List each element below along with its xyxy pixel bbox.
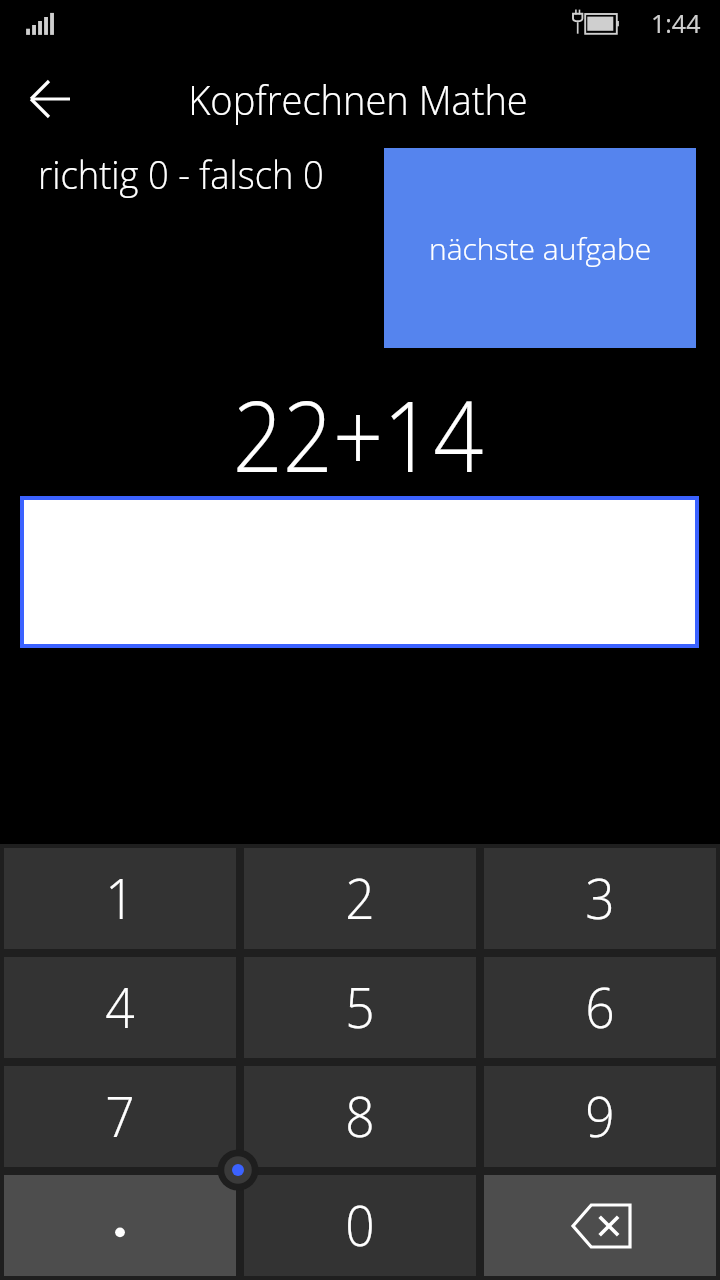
staticText: 0	[345, 1186, 375, 1262]
staticText: 1:44	[651, 6, 701, 40]
button[interactable]: nächste aufgabe	[384, 148, 696, 348]
button[interactable]: Decimal point	[4, 1175, 236, 1276]
button[interactable]: 4	[4, 957, 236, 1058]
staticText: richtig 0 - falsch 0	[38, 148, 324, 200]
staticText: 9	[585, 1077, 615, 1153]
button[interactable]: 5	[244, 957, 476, 1058]
staticText: 22+14	[32, 368, 684, 500]
other: Backspace	[484, 1175, 716, 1276]
staticText: 8	[345, 1077, 375, 1153]
button[interactable]: 9	[484, 1066, 716, 1167]
staticText: nächste aufgabe	[429, 228, 652, 269]
staticText: 5	[345, 968, 375, 1044]
staticText: Kopfrechnen Mathe	[16, 72, 700, 126]
button[interactable]: 0	[244, 1175, 476, 1276]
staticText: 4	[105, 968, 135, 1044]
button[interactable]: 2	[244, 848, 476, 949]
button[interactable]: 6	[484, 957, 716, 1058]
other: Decimal point	[4, 1175, 236, 1276]
button[interactable]: Back	[12, 68, 88, 130]
staticText: 3	[585, 859, 615, 935]
button[interactable]: 3	[484, 848, 716, 949]
staticText: 6	[585, 968, 615, 1044]
staticText: 1	[105, 859, 135, 935]
button[interactable]: 1	[4, 848, 236, 949]
staticText: 2	[345, 859, 375, 935]
button[interactable]: 8	[244, 1066, 476, 1167]
staticText: 7	[105, 1077, 135, 1153]
button[interactable]: Backspace	[484, 1175, 716, 1276]
button[interactable]: 7	[4, 1066, 236, 1167]
